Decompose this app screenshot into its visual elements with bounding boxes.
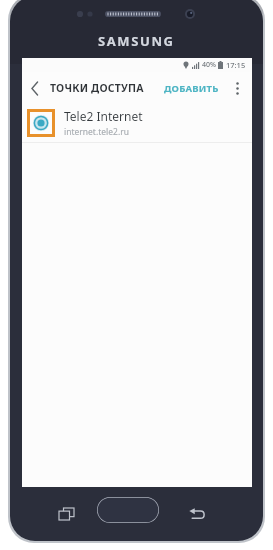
button[interactable]: More options — [226, 77, 248, 99]
button[interactable]: Back — [22, 75, 48, 101]
staticText: 40% — [202, 60, 216, 70]
staticText: ТОЧКИ ДОСТУПА — [50, 81, 144, 95]
button[interactable]: Tele2 Internet — [22, 104, 252, 142]
staticText: internet.tele2.ru — [64, 126, 129, 138]
staticText: 17:15 — [226, 60, 246, 70]
staticText: ДОБАВИТЬ — [164, 82, 219, 95]
staticText: SAMSUNG — [98, 32, 175, 50]
button[interactable]: Back — [182, 499, 212, 529]
button[interactable]: Recents — [51, 499, 81, 529]
staticText: Tele2 Internet — [64, 108, 143, 124]
button[interactable]: Home — [97, 497, 159, 523]
button[interactable]: ДОБАВИТЬ — [159, 76, 224, 101]
